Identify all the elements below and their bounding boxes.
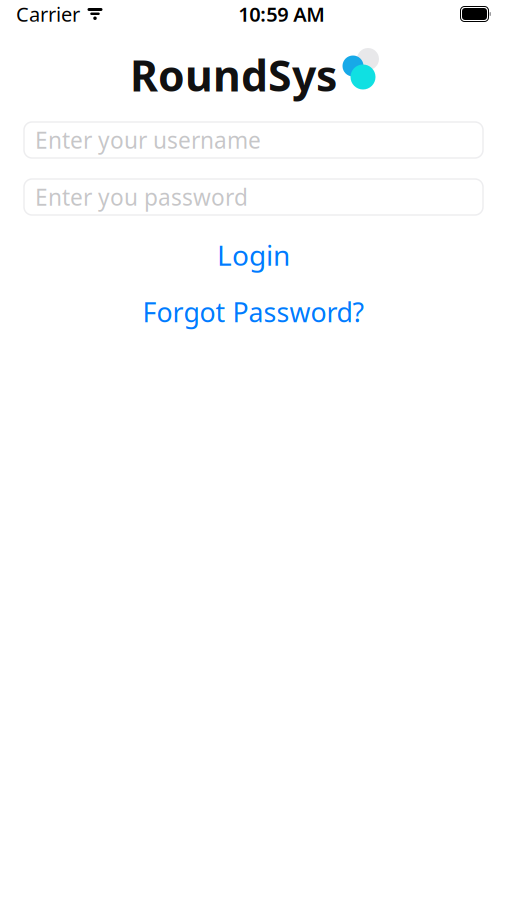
staticText: Carrier — [16, 1, 80, 27]
staticText: Login — [217, 236, 290, 274]
button[interactable]: Login — [0, 238, 507, 272]
staticText: Forgot Password? — [142, 294, 364, 330]
staticText: RoundSys — [130, 47, 337, 103]
staticText: 10:59 AM — [238, 1, 325, 27]
button[interactable]: Forgot Password? — [0, 295, 507, 329]
button[interactable]: Enter you password — [24, 179, 483, 215]
staticText: Enter your username — [35, 125, 261, 155]
button[interactable]: Enter your username — [24, 122, 483, 158]
staticText: Enter you password — [35, 182, 248, 212]
